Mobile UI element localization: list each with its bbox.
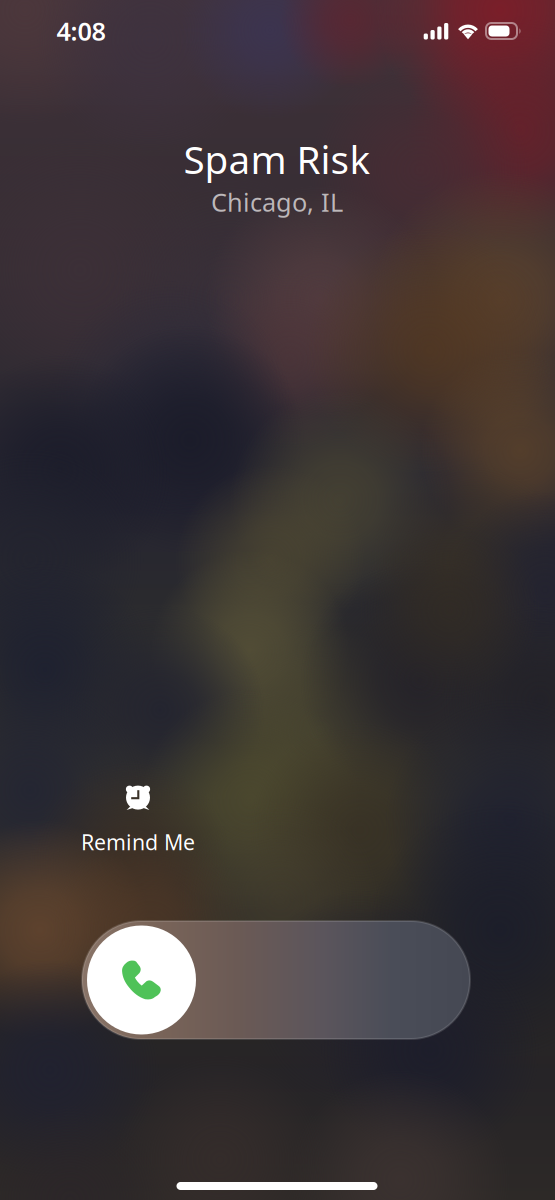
staticText: Spam Risk <box>183 133 370 185</box>
staticText: Chicago, IL <box>211 185 343 219</box>
button[interactable]: Remind Me <box>62 783 214 863</box>
staticText: 4:08 <box>56 14 105 48</box>
button[interactable] <box>82 921 470 1039</box>
staticText: Remind Me <box>81 828 195 856</box>
